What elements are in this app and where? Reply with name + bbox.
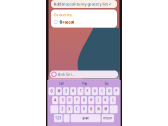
staticText: Ask Siri… [58,72,75,77]
button[interactable]: I [99,87,105,95]
staticText: Play [81,82,86,85]
staticText: N [97,107,99,111]
button[interactable] [64,114,70,122]
staticText: H [90,98,92,102]
button[interactable]: space [71,114,101,122]
staticText: R [72,89,74,93]
staticText: A [54,98,56,102]
staticText: G [83,98,85,102]
button[interactable]: return [102,114,114,122]
staticText: Groceries [54,12,72,17]
staticText: K [105,98,107,102]
staticText: M [105,107,107,111]
button[interactable]: D [66,96,73,104]
staticText: P [115,89,117,93]
button[interactable]: F [74,96,80,104]
button[interactable]: V [81,105,87,113]
button[interactable]: U [92,87,98,95]
button[interactable]: R [70,87,76,95]
staticText: S [62,98,63,102]
button[interactable]: Play [73,81,95,86]
staticText: C [76,107,78,111]
button[interactable]: T [77,87,83,95]
button[interactable]: M [102,105,109,113]
button[interactable]: N [95,105,101,113]
button[interactable]: W [56,87,62,95]
button[interactable]: K [103,96,109,104]
staticText: V [83,107,85,111]
button[interactable] [50,105,58,113]
button[interactable]: O [106,87,112,95]
staticText: Add broccoli to my grocery list ✓ [53,1,111,7]
button[interactable]: H [88,96,94,104]
button[interactable]: X [66,105,73,113]
button[interactable]: C [74,105,80,113]
staticText: D [69,98,71,102]
button[interactable]: G [81,96,87,104]
button[interactable]: Q [48,87,55,95]
staticText: O [108,89,110,93]
button[interactable]: Groceries [51,9,117,28]
button[interactable]: L [110,96,116,104]
button[interactable]: S [59,96,65,104]
button[interactable]: Go [95,81,118,86]
staticText: Z [61,107,63,111]
staticText: Go [105,82,109,85]
staticText: W [58,89,60,93]
staticText: Q [51,89,53,93]
staticText: Call [59,82,64,85]
button[interactable]: Ask Siri… [50,70,118,78]
staticText: X [69,107,71,111]
staticText: F [76,98,77,102]
button[interactable]: E [63,87,69,95]
staticText: U [94,89,96,93]
staticText: T [80,89,81,93]
staticText: B [90,107,92,111]
staticText: L [112,98,113,102]
button[interactable]: J [95,96,101,104]
button[interactable]: 123 [54,114,63,122]
staticText: Y [87,89,89,93]
staticText: space [82,116,89,120]
button[interactable]: P [113,87,119,95]
button[interactable] [110,105,118,113]
button[interactable]: B [88,105,94,113]
button[interactable]: A [52,96,58,104]
staticText: Broccoli [59,19,74,25]
staticText: J [98,98,99,102]
button[interactable]: Z [59,105,65,113]
button[interactable]: Call [50,81,73,86]
staticText: return [103,116,112,120]
button[interactable]: Y [84,87,91,95]
staticText: 123 [55,116,61,120]
